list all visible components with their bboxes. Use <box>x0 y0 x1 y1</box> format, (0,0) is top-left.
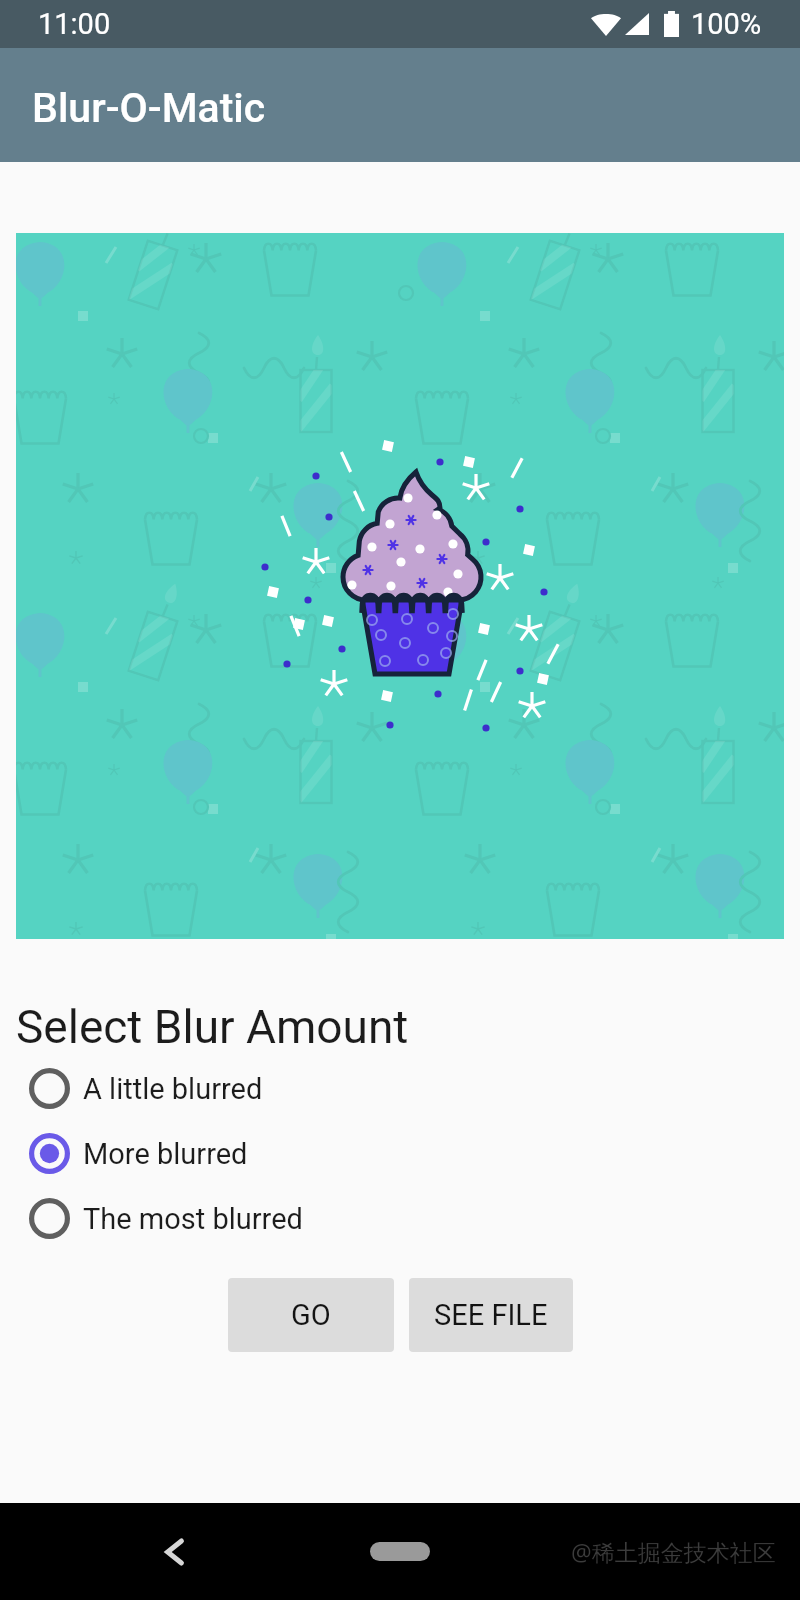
staticText: The most blurred <box>83 1202 303 1236</box>
staticText: 100% <box>691 7 762 41</box>
staticText: SEE FILE <box>434 1298 548 1332</box>
staticText: More blurred <box>83 1137 248 1171</box>
button[interactable]: A little blurred <box>0 1056 800 1121</box>
staticText: Select Blur Amount <box>16 1000 409 1054</box>
button[interactable]: The most blurred <box>0 1186 800 1251</box>
button[interactable]: Home <box>370 1542 430 1561</box>
staticText: GO <box>291 1298 331 1332</box>
staticText: @稀土掘金技术社区 <box>571 1536 776 1567</box>
staticText: 11:00 <box>38 7 111 41</box>
button[interactable]: More blurred <box>0 1121 800 1186</box>
staticText: Blur-O-Matic <box>32 84 266 132</box>
button[interactable]: Back <box>152 1529 198 1575</box>
button[interactable]: SEE FILE <box>409 1278 573 1352</box>
staticText: A little blurred <box>83 1072 263 1106</box>
button[interactable]: GO <box>228 1278 394 1352</box>
